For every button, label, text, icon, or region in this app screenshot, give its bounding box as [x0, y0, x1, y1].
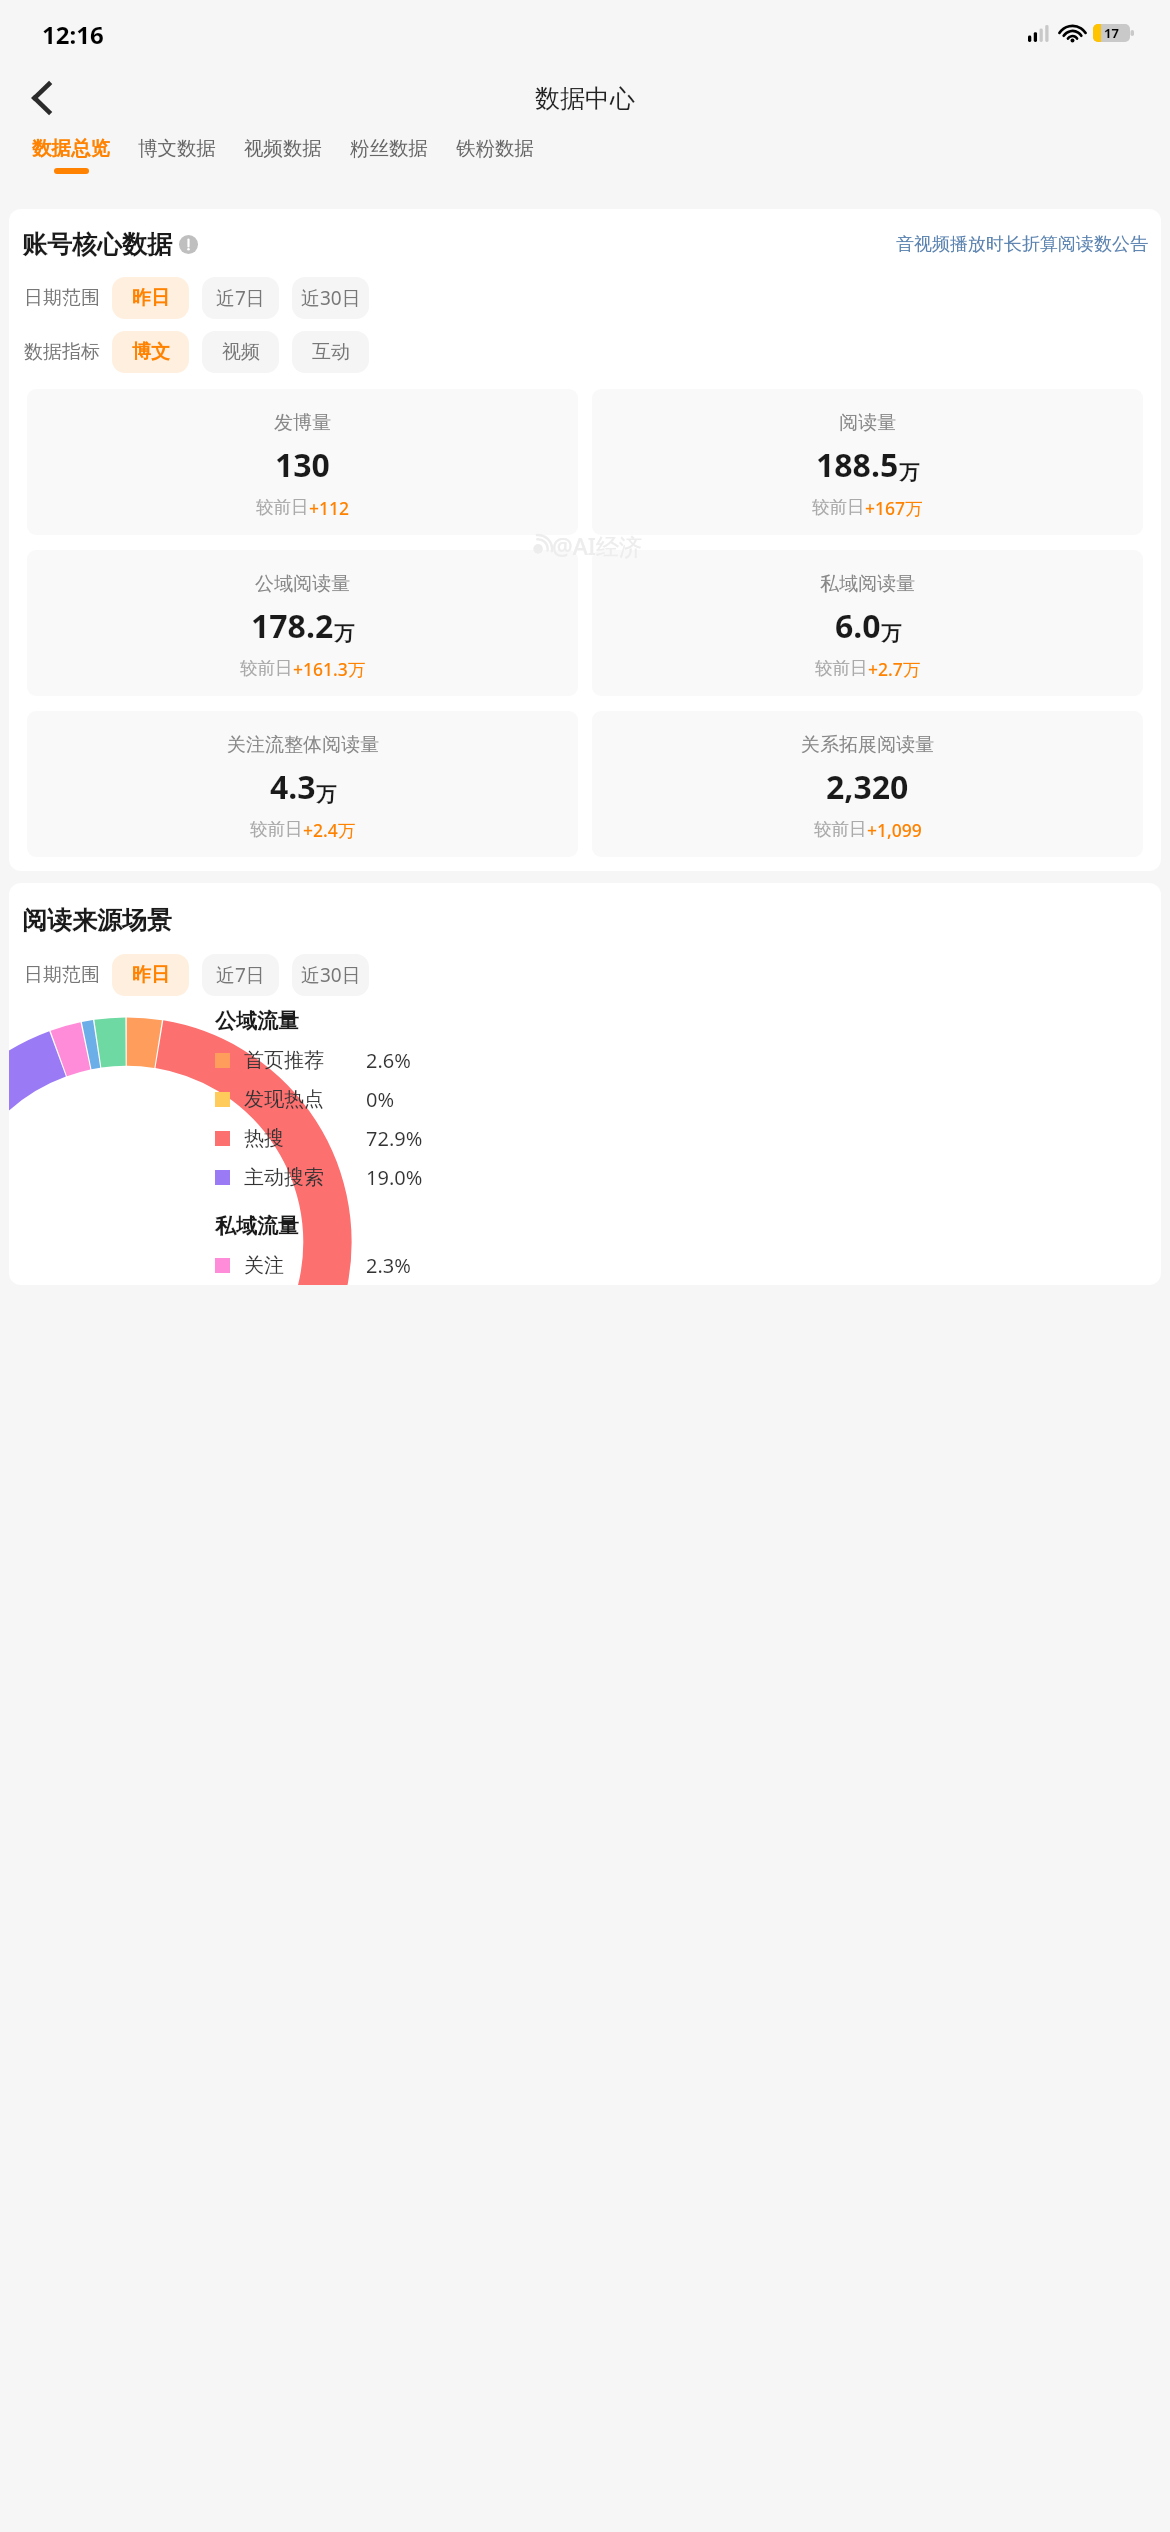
button[interactable]: 近30日: [292, 277, 369, 319]
staticText: 2,320: [826, 765, 909, 809]
button[interactable]: 关系拓展阅读量: [592, 711, 1143, 857]
staticText: 主动搜索: [244, 1165, 352, 1190]
staticText: 72.9%: [366, 1125, 423, 1152]
button[interactable]: 公域阅读量: [27, 550, 578, 696]
staticText: +2.4万: [303, 818, 356, 842]
staticText: 较前日: [812, 496, 865, 518]
button[interactable]: 昨日: [112, 954, 189, 996]
staticText: 关系拓展阅读量: [801, 733, 934, 757]
staticText: 较前日: [250, 818, 303, 840]
staticText: 私域流量: [215, 1213, 299, 1239]
staticText: 账号核心数据: [22, 229, 172, 260]
staticText: 互动: [312, 340, 350, 364]
button[interactable]: 粉丝数据: [336, 134, 442, 170]
staticText: 视频: [222, 340, 260, 364]
staticText: 昨日: [132, 963, 170, 987]
button[interactable]: 主动搜索: [215, 1164, 1161, 1191]
button[interactable]: 博文数据: [124, 134, 230, 170]
staticText: 130: [275, 443, 330, 487]
button[interactable]: 互动: [292, 331, 369, 373]
button[interactable]: Back: [10, 67, 72, 129]
button[interactable]: 音视频播放时长折算阅读数公告: [896, 233, 1148, 256]
staticText: 关注: [244, 1253, 352, 1278]
staticText: 较前日: [256, 496, 309, 518]
staticText: 日期范围: [24, 963, 100, 987]
button[interactable]: 近7日: [202, 954, 279, 996]
staticText: 公域流量: [215, 1008, 299, 1034]
staticText: 万: [881, 621, 901, 646]
staticText: 关注流整体阅读量: [227, 733, 379, 757]
staticText: 2.6%: [366, 1047, 411, 1074]
staticText: 较前日: [240, 657, 293, 679]
staticText: 视频数据: [244, 136, 322, 161]
staticText: +167万: [865, 496, 923, 520]
button[interactable]: 近7日: [202, 277, 279, 319]
staticText: +1,099: [867, 818, 922, 842]
staticText: 数据指标: [24, 340, 100, 364]
button[interactable]: 铁粉数据: [442, 134, 548, 170]
staticText: 12:16: [42, 18, 104, 51]
button[interactable]: 发现热点: [215, 1086, 1161, 1113]
staticText: 近30日: [301, 285, 361, 311]
button[interactable]: 视频: [202, 331, 279, 373]
staticText: 万: [334, 621, 354, 646]
button[interactable]: 昨日: [112, 277, 189, 319]
staticText: 188.5: [816, 443, 899, 487]
staticText: 首页推荐: [244, 1048, 352, 1073]
staticText: +161.3万: [293, 657, 366, 681]
staticText: 6.0: [835, 604, 881, 648]
staticText: 发现热点: [244, 1087, 352, 1112]
staticText: 粉丝数据: [350, 136, 428, 161]
button[interactable]: 热搜: [215, 1125, 1161, 1152]
staticText: 178.2: [251, 604, 334, 648]
staticText: 近30日: [301, 962, 361, 988]
button[interactable]: 私域阅读量: [592, 550, 1143, 696]
button[interactable]: 近30日: [292, 954, 369, 996]
staticText: 较前日: [814, 818, 867, 840]
staticText: 较前日: [815, 657, 868, 679]
staticText: 阅读量: [839, 411, 896, 435]
staticText: 4.3: [270, 765, 316, 809]
staticText: 阅读来源场景: [22, 905, 172, 936]
staticText: 万: [316, 782, 336, 807]
staticText: 数据总览: [32, 136, 110, 161]
staticText: 近7日: [216, 285, 265, 311]
staticText: 私域阅读量: [820, 572, 915, 596]
staticText: 17: [1104, 24, 1119, 42]
staticText: 0%: [366, 1086, 395, 1113]
staticText: 热搜: [244, 1126, 352, 1151]
button[interactable]: 说明: [179, 235, 198, 254]
staticText: 昨日: [132, 286, 170, 310]
button[interactable]: 关注流整体阅读量: [27, 711, 578, 857]
staticText: +112: [309, 496, 350, 520]
staticText: 博文数据: [138, 136, 216, 161]
staticText: 数据中心: [535, 83, 635, 114]
staticText: 万: [899, 460, 919, 485]
button[interactable]: 阅读量: [592, 389, 1143, 535]
staticText: 2.3%: [366, 1252, 411, 1279]
staticText: 公域阅读量: [255, 572, 350, 596]
button[interactable]: 视频数据: [230, 134, 336, 170]
staticText: 发博量: [274, 411, 331, 435]
staticText: 博文: [132, 340, 170, 364]
button[interactable]: 博文: [112, 331, 189, 373]
staticText: @AI经济: [552, 530, 642, 561]
button[interactable]: 发博量: [27, 389, 578, 535]
staticText: 日期范围: [24, 286, 100, 310]
staticText: 铁粉数据: [456, 136, 534, 161]
button[interactable]: 首页推荐: [215, 1047, 1161, 1074]
staticText: +2.7万: [868, 657, 921, 681]
button[interactable]: 关注: [215, 1252, 1161, 1279]
staticText: 19.0%: [366, 1164, 423, 1191]
button[interactable]: 数据总览: [18, 134, 124, 176]
staticText: 近7日: [216, 962, 265, 988]
